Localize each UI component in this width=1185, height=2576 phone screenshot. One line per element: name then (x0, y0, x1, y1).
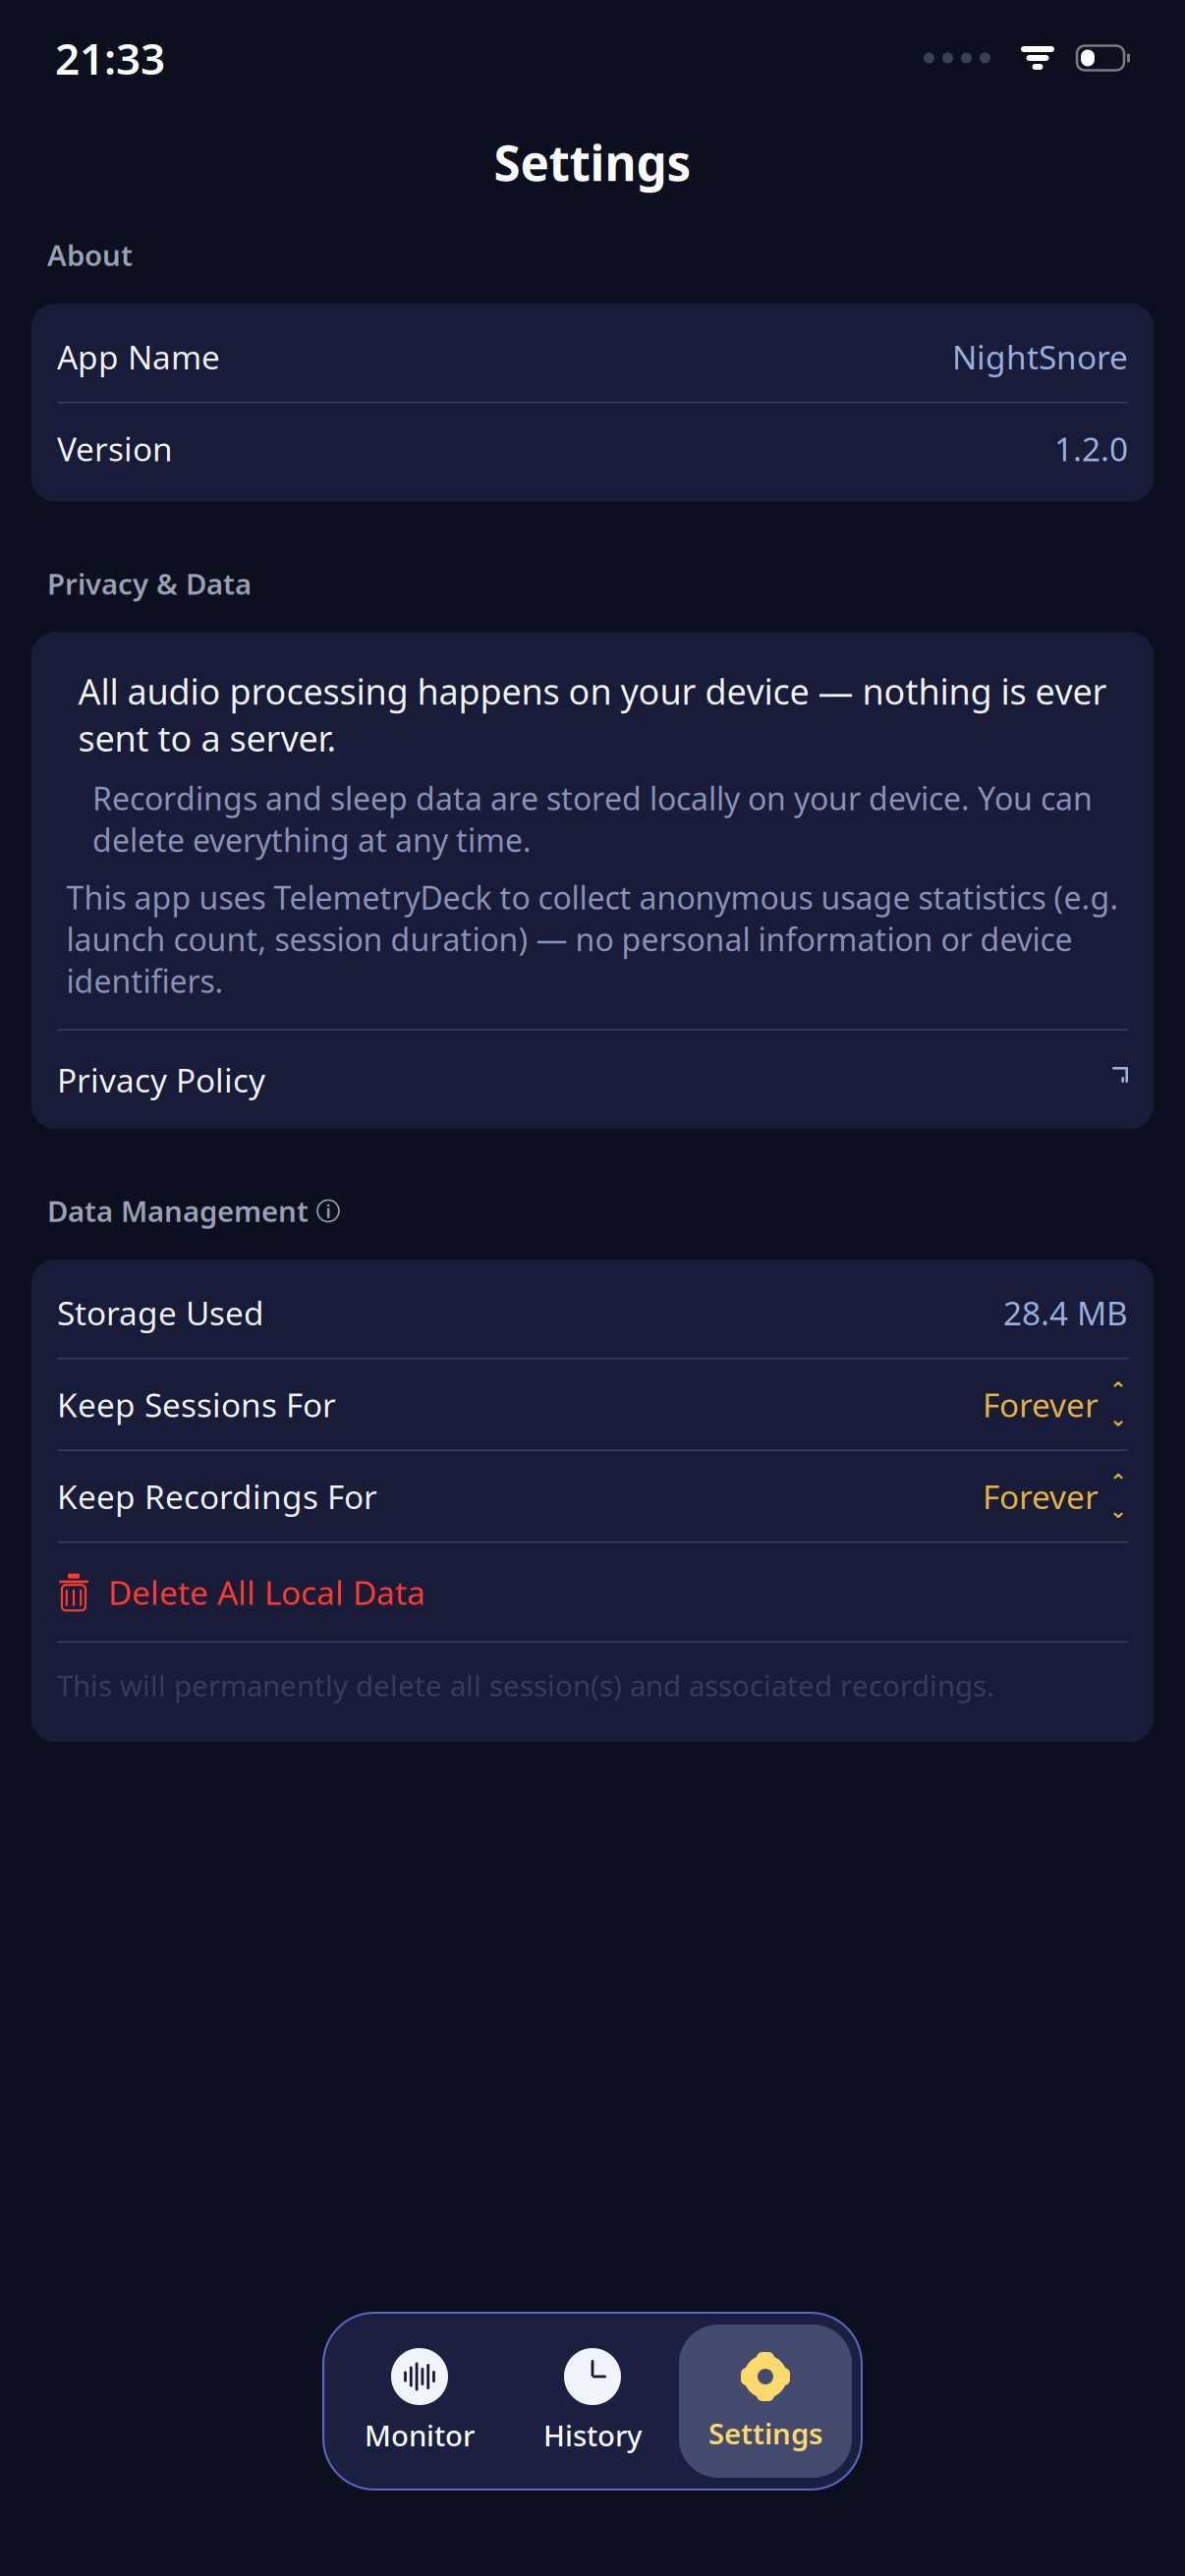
staticText: This app uses TelemetryDeck to collect a… (66, 876, 1119, 1002)
staticText: ⌃ (1109, 1378, 1127, 1402)
staticText: NightSnore (952, 335, 1128, 378)
staticText: Data Management (47, 1192, 309, 1230)
button[interactable]: Delete All Local Data (31, 1543, 1154, 1641)
staticText: This will permanently delete all session… (57, 1666, 994, 1705)
staticText: History (543, 2416, 642, 2454)
button[interactable]: Monitor (333, 2324, 506, 2478)
button[interactable]: Keep Sessions For (31, 1359, 1154, 1450)
button[interactable]: Privacy Policy (31, 1031, 1154, 1129)
button[interactable]: Keep Recordings For (31, 1451, 1154, 1541)
staticText: Forever (983, 1383, 1099, 1426)
staticText: Version (57, 427, 173, 470)
staticText: ⌃ (1109, 1470, 1127, 1494)
staticText: i (326, 1199, 331, 1223)
staticText: Keep Recordings For (57, 1474, 377, 1518)
staticText: Forever (983, 1474, 1099, 1518)
staticText: Settings (708, 2414, 822, 2452)
staticText: All audio processing happens on your dev… (78, 667, 1107, 761)
staticText: Delete All Local Data (108, 1570, 425, 1614)
staticText: Monitor (365, 2416, 475, 2454)
staticText: Settings (494, 130, 691, 194)
staticText: ⌄ (1109, 1499, 1127, 1523)
staticText: 21:33 (55, 29, 165, 87)
staticText: Keep Sessions For (57, 1383, 336, 1426)
staticText: 1.2.0 (1054, 427, 1128, 470)
staticText: Privacy Policy (57, 1058, 265, 1102)
staticText: Recordings and sleep data are stored loc… (92, 777, 1093, 861)
staticText: About (47, 236, 133, 274)
staticText: App Name (57, 335, 220, 378)
staticText: ⌄ (1109, 1407, 1127, 1431)
button[interactable]: History (506, 2324, 679, 2478)
staticText: Privacy & Data (47, 564, 252, 603)
staticText: Storage Used (57, 1291, 264, 1334)
staticText: 28.4 MB (1003, 1291, 1128, 1334)
button[interactable]: Settings (679, 2324, 852, 2478)
